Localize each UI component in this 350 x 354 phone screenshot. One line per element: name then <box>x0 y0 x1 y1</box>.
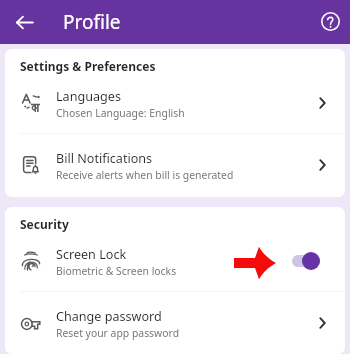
button[interactable]: Help <box>316 8 344 36</box>
button[interactable]: Screen Lock <box>5 230 345 291</box>
staticText: Settings & Preferences <box>20 58 156 74</box>
staticText: Biometric & Screen locks <box>56 264 177 278</box>
staticText: Profile <box>63 9 121 35</box>
staticText: Chosen Language: English <box>56 106 185 120</box>
staticText: Bill Notifications <box>56 150 153 167</box>
staticText: Change password <box>56 308 162 325</box>
staticText: Screen Lock <box>56 246 127 263</box>
button[interactable]: Bill Notifications <box>5 134 345 195</box>
button[interactable]: Back <box>9 7 40 38</box>
staticText: Reset your app password <box>56 326 180 340</box>
staticText: Security <box>20 216 69 232</box>
staticText: Languages <box>56 88 121 105</box>
button[interactable]: Languages <box>5 72 345 133</box>
button[interactable]: Change password <box>5 292 345 353</box>
button[interactable]: Screen Lock toggle <box>292 251 320 270</box>
staticText: Receive alerts when bill is generated <box>56 168 234 182</box>
